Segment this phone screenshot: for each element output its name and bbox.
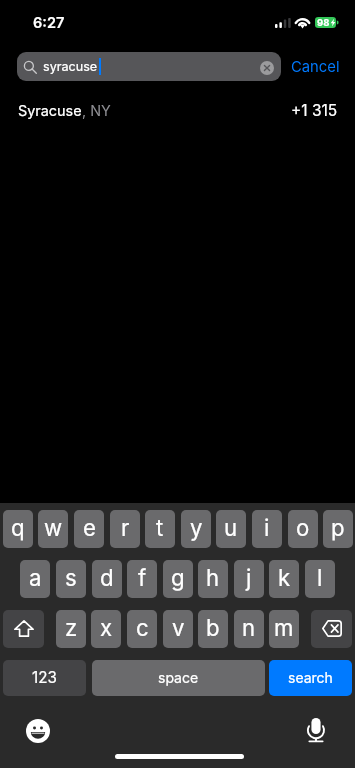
button[interactable]: Syracuse <box>0 93 355 127</box>
staticText: u <box>224 514 238 541</box>
button[interactable]: v <box>163 610 193 648</box>
staticText: b <box>206 614 220 641</box>
button[interactable]: n <box>234 610 264 648</box>
button[interactable]: Dictation <box>307 718 325 742</box>
button[interactable]: a <box>20 560 50 598</box>
button[interactable]: q <box>3 510 33 548</box>
staticText: c <box>136 614 149 641</box>
button[interactable]: Clear text <box>260 61 274 75</box>
staticText: h <box>206 564 220 591</box>
button[interactable]: Backspace <box>311 610 352 648</box>
button[interactable]: 123 <box>3 660 86 696</box>
staticText: z <box>65 614 78 641</box>
button[interactable]: f <box>127 560 157 598</box>
staticText: e <box>83 514 96 541</box>
staticText: syracuse <box>43 59 98 74</box>
button[interactable]: t <box>145 510 175 548</box>
button[interactable]: j <box>234 560 264 598</box>
staticText: s <box>65 564 77 591</box>
staticText: w <box>44 514 63 541</box>
staticText: m <box>274 614 294 641</box>
staticText: a <box>29 564 42 591</box>
staticText: q <box>11 514 25 541</box>
button[interactable]: s <box>56 560 86 598</box>
staticText: 98 <box>317 17 330 28</box>
staticText: p <box>331 514 345 541</box>
staticText: 123 <box>32 668 57 686</box>
staticText: d <box>100 564 114 591</box>
button[interactable]: space <box>92 660 265 696</box>
staticText: t <box>156 514 164 541</box>
button[interactable]: p <box>323 510 353 548</box>
staticText: o <box>296 514 310 541</box>
staticText: i <box>264 514 270 541</box>
staticText: r <box>121 514 130 541</box>
staticText: x <box>100 614 113 641</box>
button[interactable]: m <box>269 610 299 648</box>
button[interactable]: Cancel <box>285 52 346 81</box>
button[interactable]: c <box>127 610 157 648</box>
staticText: search <box>288 669 333 686</box>
staticText: j <box>246 564 252 591</box>
button[interactable]: i <box>252 510 282 548</box>
staticText: 6:27 <box>33 14 65 32</box>
button[interactable]: syracuse <box>17 52 281 81</box>
button[interactable]: h <box>198 560 228 598</box>
button[interactable]: x <box>91 610 121 648</box>
button[interactable]: y <box>181 510 211 548</box>
staticText: g <box>171 564 185 591</box>
button[interactable]: Emoji keyboard <box>26 719 50 743</box>
staticText: f <box>138 564 147 591</box>
button[interactable]: o <box>288 510 318 548</box>
staticText: Syracuse <box>18 102 82 119</box>
staticText: space <box>158 669 199 686</box>
button[interactable]: r <box>110 510 140 548</box>
button[interactable]: search <box>269 660 352 696</box>
button[interactable]: g <box>163 560 193 598</box>
button[interactable]: w <box>38 510 68 548</box>
button[interactable]: l <box>305 560 335 598</box>
staticText: l <box>317 564 323 591</box>
button[interactable]: z <box>56 610 86 648</box>
button[interactable]: e <box>74 510 104 548</box>
staticText: , NY <box>82 102 111 119</box>
staticText: n <box>242 614 256 641</box>
staticText: +1 315 <box>291 101 338 120</box>
staticText: v <box>172 614 185 641</box>
button[interactable]: d <box>92 560 122 598</box>
button[interactable]: u <box>216 510 246 548</box>
staticText: k <box>278 564 291 591</box>
button[interactable]: Shift <box>3 610 44 648</box>
staticText: y <box>190 514 203 541</box>
button[interactable]: k <box>269 560 299 598</box>
staticText: Cancel <box>291 58 340 76</box>
button[interactable]: b <box>198 610 228 648</box>
